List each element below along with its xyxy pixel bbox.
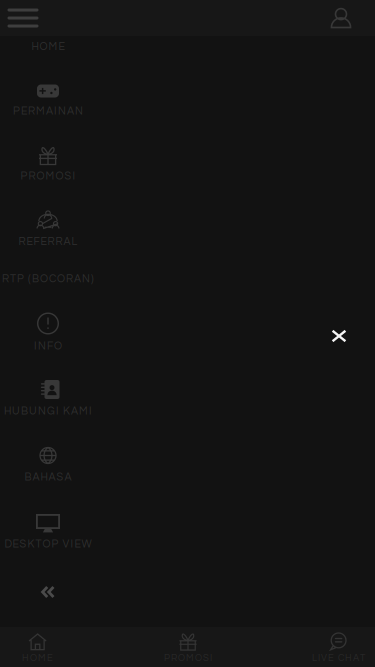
button[interactable]: Collapse menu (18, 572, 78, 612)
button[interactable]: PERMAINAN (0, 75, 96, 123)
staticText: HOME (22, 653, 53, 663)
button[interactable]: RTP (BOCORAN) (0, 263, 96, 295)
button[interactable]: PROMOSI (0, 139, 96, 188)
staticText: PROMOSI (20, 171, 75, 182)
button[interactable]: BAHASA (0, 439, 96, 489)
button[interactable]: HUBUNGI KAMI (0, 373, 96, 423)
button[interactable]: REFERRAL (0, 204, 96, 254)
staticText: LIVE CHAT (312, 653, 365, 663)
staticText: HOME (31, 41, 64, 52)
staticText: HUBUNGI KAMI (4, 406, 92, 417)
button[interactable]: LIVE CHAT (291, 627, 375, 667)
staticText: PERMAINAN (13, 106, 83, 117)
staticText: REFERRAL (18, 236, 77, 247)
staticText: RTP (BOCORAN) (2, 273, 94, 284)
button[interactable]: PROMOSI (140, 627, 236, 667)
button[interactable]: INFO (0, 307, 96, 358)
button[interactable]: HOME (0, 5, 96, 59)
staticText: BAHASA (24, 472, 71, 483)
staticText: DESKTOP VIEW (4, 539, 91, 550)
button[interactable]: Close (317, 314, 361, 358)
button[interactable]: HOME (0, 627, 86, 667)
staticText: INFO (34, 341, 62, 352)
button[interactable]: DESKTOP VIEW (0, 505, 96, 556)
button[interactable]: Account (318, 0, 364, 36)
button[interactable]: Menu (0, 0, 46, 36)
staticText: PROMOSI (164, 653, 212, 663)
